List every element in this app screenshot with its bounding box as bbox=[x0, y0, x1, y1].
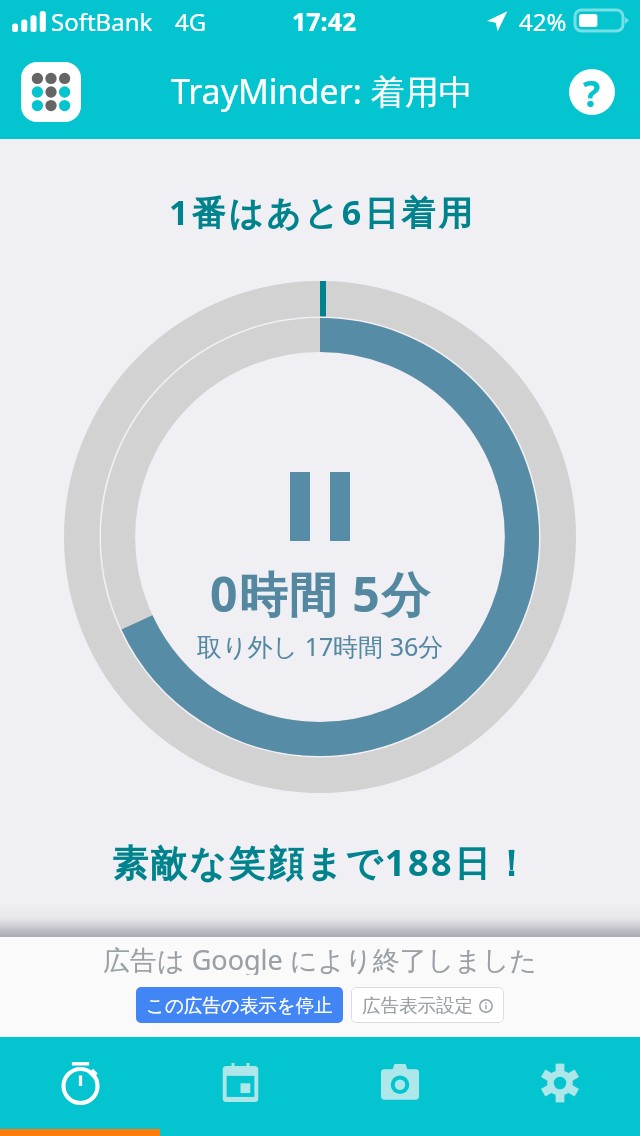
staticText: 1番はあと6日着用 bbox=[169, 189, 476, 235]
button[interactable]: Settings bbox=[480, 1037, 640, 1136]
staticText: TrayMinder: 着用中 bbox=[171, 68, 473, 114]
staticText: この広告の表示を停止 bbox=[146, 994, 333, 1017]
button[interactable]: Calendar bbox=[160, 1037, 320, 1136]
staticText: SoftBank bbox=[51, 5, 153, 38]
staticText: ? bbox=[583, 69, 601, 115]
button[interactable]: App menu bbox=[21, 62, 81, 122]
button[interactable]: Camera bbox=[320, 1037, 480, 1136]
staticText: 0時間 5分 bbox=[210, 561, 431, 627]
staticText: 素敵な笑顔まで188日！ bbox=[112, 838, 532, 887]
staticText: 4G bbox=[175, 5, 207, 38]
button[interactable]: 広告表示設定 bbox=[351, 987, 504, 1023]
button[interactable]: Help bbox=[562, 62, 622, 122]
button[interactable]: Timer bbox=[0, 1037, 160, 1136]
staticText: 42% bbox=[519, 5, 567, 38]
staticText: 広告は Google により終了しました bbox=[103, 941, 538, 975]
button[interactable]: この広告の表示を停止 bbox=[136, 987, 343, 1023]
staticText: 17:42 bbox=[292, 4, 357, 38]
staticText: 取り外し 17時間 36分 bbox=[197, 629, 444, 663]
staticText: 広告表示設定 bbox=[362, 994, 473, 1017]
